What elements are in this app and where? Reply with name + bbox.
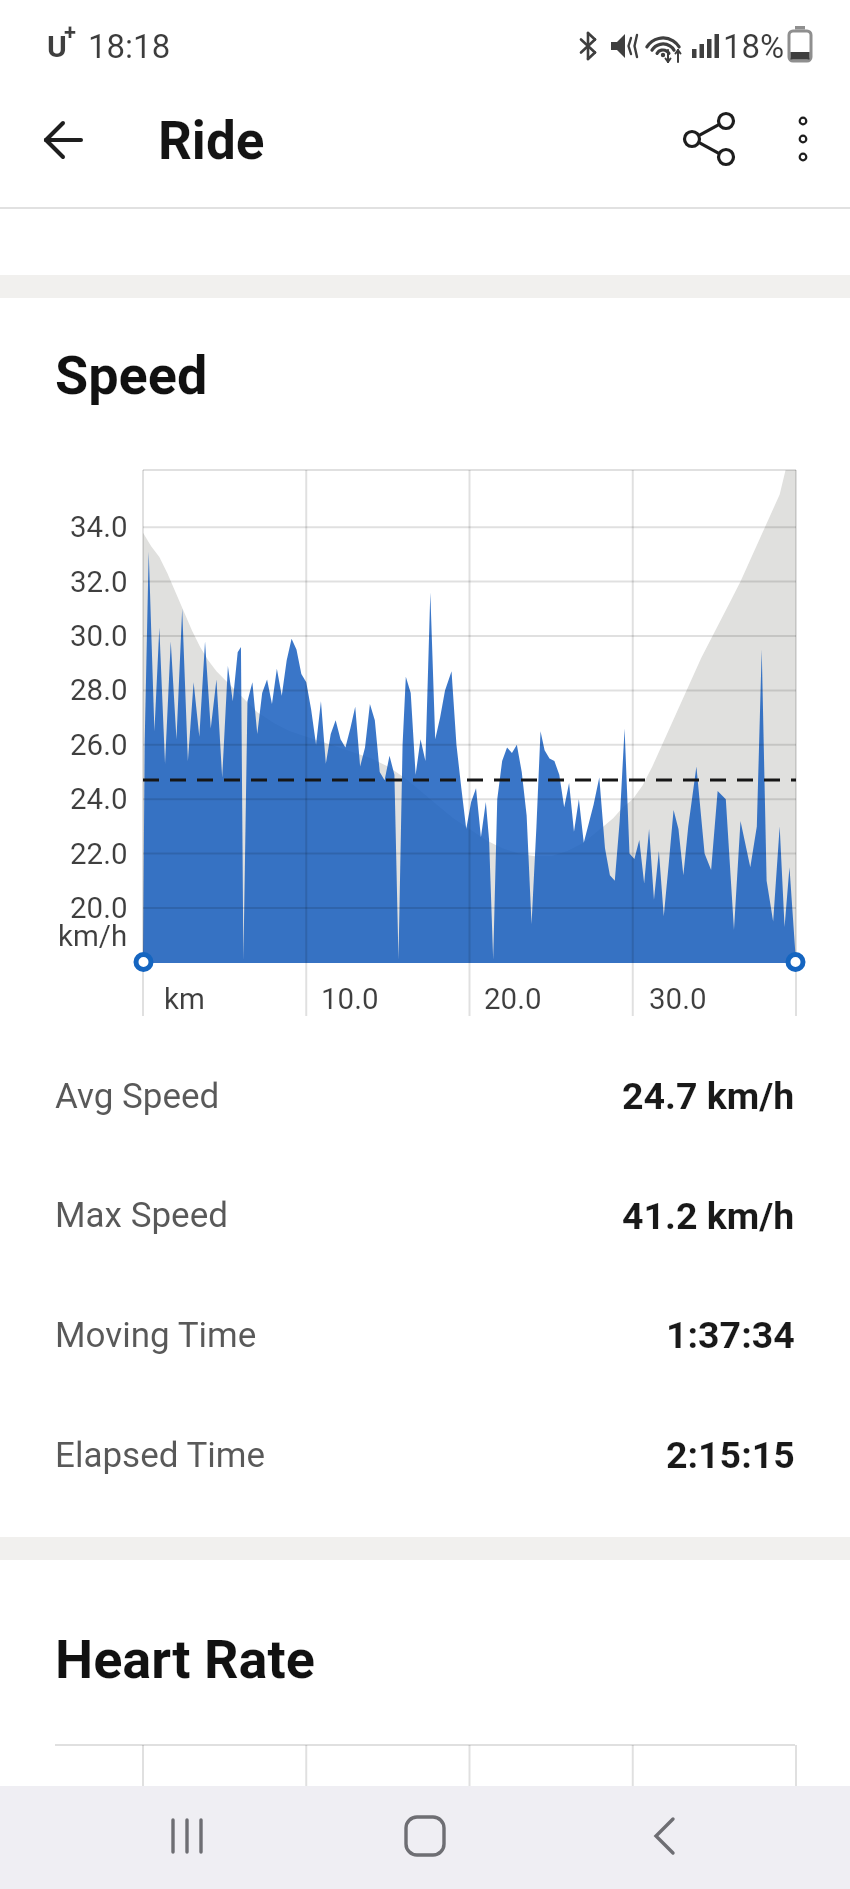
button[interactable] <box>28 112 84 168</box>
staticText: 32.0 <box>70 565 128 600</box>
staticText: 24.7 km/h <box>622 1074 795 1118</box>
staticText: Heart Rate <box>55 1628 315 1691</box>
staticText: 24.0 <box>70 782 128 817</box>
staticText: Avg Speed <box>55 1076 220 1117</box>
staticText: 30.0 <box>649 982 707 1017</box>
button[interactable] <box>672 112 728 168</box>
staticText: 20.0 <box>70 891 128 926</box>
staticText: 34.0 <box>70 510 128 545</box>
staticText: Ride <box>158 110 265 172</box>
staticText: 10.0 <box>321 982 379 1017</box>
staticText: 28.0 <box>70 673 128 708</box>
staticText: 18:18 <box>88 27 171 66</box>
button[interactable] <box>625 1796 705 1876</box>
button[interactable] <box>776 112 832 168</box>
staticText: 22.0 <box>70 837 128 872</box>
staticText: 2:15:15 <box>666 1433 795 1477</box>
staticText: 41.2 km/h <box>622 1194 795 1238</box>
staticText: 30.0 <box>70 619 128 654</box>
button[interactable] <box>385 1796 465 1876</box>
staticText: Max Speed <box>55 1195 228 1236</box>
staticText: Elapsed Time <box>55 1435 266 1476</box>
staticText: km <box>164 982 205 1017</box>
staticText: Moving Time <box>55 1315 257 1356</box>
staticText: + <box>64 20 77 46</box>
staticText: 18% <box>723 27 785 66</box>
staticText: Speed <box>55 344 208 407</box>
staticText: km/h <box>58 919 128 954</box>
staticText: U <box>47 29 67 64</box>
staticText: 20.0 <box>484 982 542 1017</box>
staticText: 1:37:34 <box>666 1313 795 1357</box>
staticText: 26.0 <box>70 728 128 763</box>
button[interactable] <box>147 1796 227 1876</box>
